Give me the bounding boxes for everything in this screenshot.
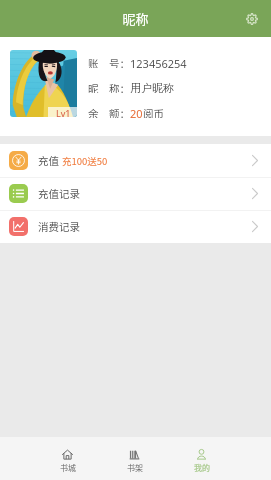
staticText: Lv1 — [56, 107, 71, 117]
staticText: 阅币 — [143, 106, 164, 118]
staticText: 充100送50 — [62, 154, 108, 168]
button[interactable]: 我的 — [168, 437, 235, 480]
staticText: 充值 — [38, 153, 59, 168]
staticText: 123456254 — [130, 56, 187, 68]
button[interactable]: 书架 — [101, 437, 168, 480]
staticText: 消费记录 — [38, 219, 80, 234]
button[interactable]: 充值 — [0, 144, 271, 177]
button[interactable]: Settings — [239, 6, 265, 32]
staticText: 书城 — [60, 462, 76, 474]
button[interactable]: 充值记录 — [0, 177, 271, 210]
staticText: 昵称 — [122, 9, 149, 28]
staticText: 昵 称： — [88, 81, 130, 93]
staticText: 账 号： — [88, 56, 130, 68]
staticText: 余 额： — [88, 106, 130, 118]
staticText: 充值记录 — [38, 186, 80, 201]
staticText: 20 — [130, 106, 143, 118]
staticText: 书架 — [127, 462, 143, 474]
staticText: 用户昵称 — [130, 81, 174, 93]
button[interactable]: 书城 — [34, 437, 101, 480]
button[interactable]: 消费记录 — [0, 210, 271, 243]
staticText: 我的 — [194, 462, 210, 474]
